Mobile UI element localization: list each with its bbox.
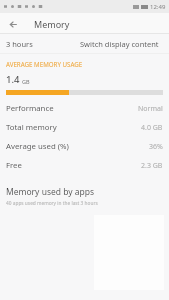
staticText: Total memory — [6, 122, 57, 133]
staticText: 12:49 — [150, 3, 166, 11]
staticText: Switch display content — [80, 39, 159, 49]
staticText: Normal — [138, 104, 163, 114]
staticText: 40 apps used memory in the last 3 hours — [6, 200, 98, 207]
button[interactable]: Back — [5, 16, 21, 32]
staticText: 36% — [149, 142, 163, 152]
button[interactable]: Performance — [0, 99, 169, 118]
staticText: 1.4 — [6, 73, 20, 86]
button[interactable]: Total memory — [0, 118, 169, 137]
staticText: AVERAGE MEMORY USAGE — [6, 60, 83, 68]
staticText: 4.0 GB — [141, 123, 163, 133]
staticText: Memory — [34, 18, 70, 30]
staticText: Free — [6, 160, 22, 171]
staticText: 3 hours — [6, 39, 33, 49]
button[interactable]: Average used (%) — [0, 137, 169, 156]
button[interactable]: 3 hours — [0, 34, 169, 54]
staticText: Memory used by apps — [6, 186, 95, 198]
staticText: Average used (%) — [6, 141, 69, 152]
staticText: 2.3 GB — [141, 161, 163, 171]
button[interactable]: Free — [0, 156, 169, 175]
staticText: Performance — [6, 103, 54, 114]
staticText: GB — [22, 78, 30, 85]
